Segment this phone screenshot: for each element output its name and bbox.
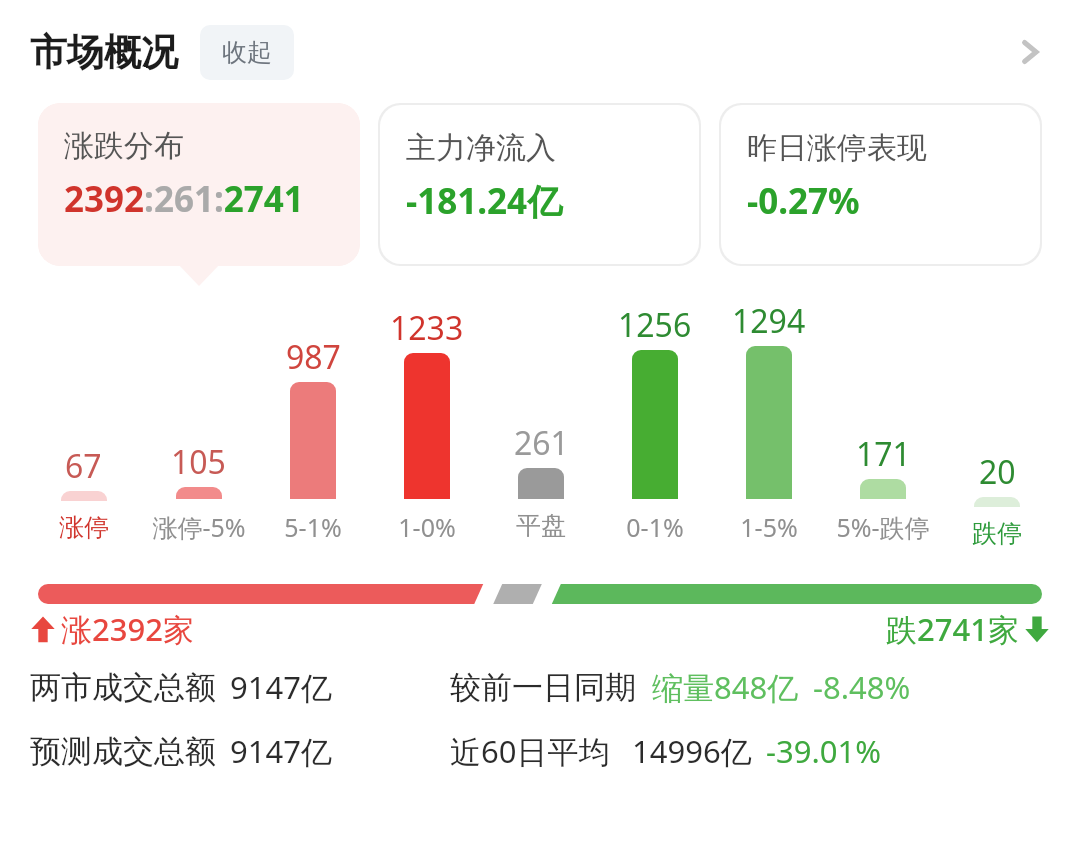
staticText: 2392:261:2741 xyxy=(64,175,304,223)
staticText: 涨跌分布 xyxy=(64,127,184,165)
staticText: 涨2392家 xyxy=(61,608,194,650)
staticText: 市场概况 xyxy=(30,29,178,76)
staticText: 5%-跌停 xyxy=(836,510,930,544)
staticText: 1-5% xyxy=(740,510,798,544)
staticText: -8.48% xyxy=(813,666,911,708)
staticText: 较前一日同期 xyxy=(450,668,636,707)
staticText: 20 xyxy=(979,450,1016,494)
staticText: 9147亿 xyxy=(230,730,332,772)
staticText: 平盘 xyxy=(516,510,566,541)
staticText: -181.24亿 xyxy=(406,177,563,225)
staticText: 5-1% xyxy=(284,510,342,544)
staticText: -0.27% xyxy=(747,177,860,225)
button[interactable]: More xyxy=(1002,24,1058,80)
staticText: -39.01% xyxy=(766,730,881,772)
staticText: 1-0% xyxy=(398,510,456,544)
button[interactable]: 昨日涨停表现 xyxy=(721,105,1040,264)
button[interactable]: 涨跌分布 xyxy=(38,103,360,266)
staticText: 67 xyxy=(65,444,102,488)
staticText: 1233 xyxy=(390,306,464,350)
staticText: 近60日平均 xyxy=(450,730,610,772)
staticText: 跌停 xyxy=(972,518,1022,549)
staticText: 1294 xyxy=(732,299,806,343)
staticText: 涨停-5% xyxy=(152,510,246,544)
staticText: 涨停 xyxy=(59,512,109,543)
staticText: 105 xyxy=(171,440,226,484)
staticText: 预测成交总额 xyxy=(30,732,216,771)
staticText: 9147亿 xyxy=(230,666,332,708)
staticText: 261 xyxy=(514,421,569,465)
staticText: 0-1% xyxy=(626,510,684,544)
staticText: 收起 xyxy=(222,37,272,68)
staticText: 跌2741家 xyxy=(886,608,1019,650)
staticText: 171 xyxy=(856,432,911,476)
button[interactable]: 主力净流入 xyxy=(380,105,699,264)
staticText: 主力净流入 xyxy=(406,129,556,167)
staticText: 987 xyxy=(286,335,341,379)
staticText: 缩量848亿 xyxy=(652,666,799,708)
staticText: 两市成交总额 xyxy=(30,668,216,707)
staticText: 14996亿 xyxy=(632,730,752,772)
staticText: 1256 xyxy=(618,303,692,347)
button[interactable]: 收起 xyxy=(200,25,294,80)
staticText: 昨日涨停表现 xyxy=(747,129,927,167)
